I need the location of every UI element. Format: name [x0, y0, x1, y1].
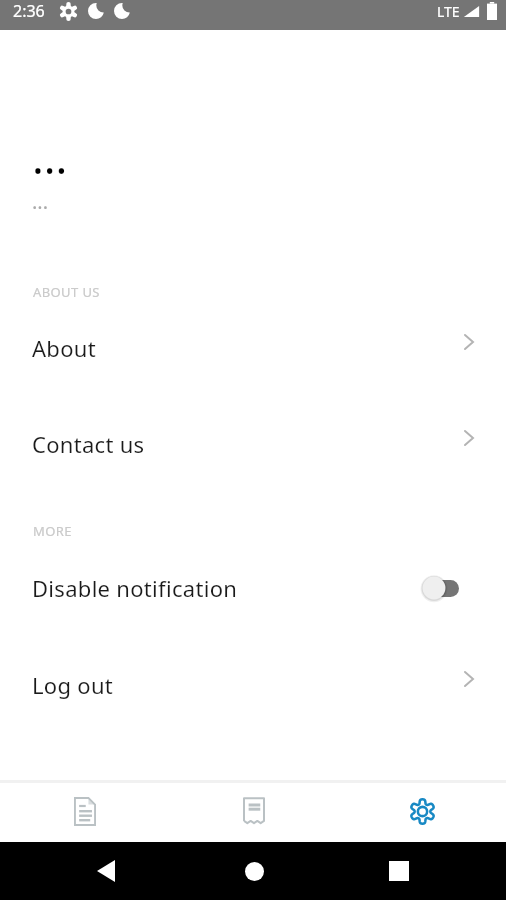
staticText: ABOUT US — [33, 283, 100, 300]
staticText: Contact us — [32, 429, 145, 459]
staticText: LTE — [437, 2, 460, 21]
button[interactable]: About — [0, 300, 506, 396]
staticText: Log out — [32, 670, 114, 700]
staticText: Disable notification — [32, 573, 238, 603]
button[interactable]: Contact us — [0, 396, 506, 492]
button[interactable]: Back — [83, 842, 129, 900]
button[interactable]: Documents — [0, 783, 168, 842]
staticText: ... — [32, 188, 49, 215]
button[interactable]: Settings — [337, 783, 506, 842]
staticText: MORE — [33, 522, 72, 539]
staticText: About — [32, 333, 96, 363]
button[interactable]: Recent apps — [376, 842, 422, 900]
button[interactable]: Receipts — [168, 783, 337, 842]
staticText: 2:36 — [13, 0, 45, 22]
staticText: ... — [32, 127, 68, 187]
button[interactable]: Disable notification — [0, 539, 506, 637]
button[interactable]: Home — [231, 842, 277, 900]
button[interactable]: Log out — [0, 637, 506, 733]
